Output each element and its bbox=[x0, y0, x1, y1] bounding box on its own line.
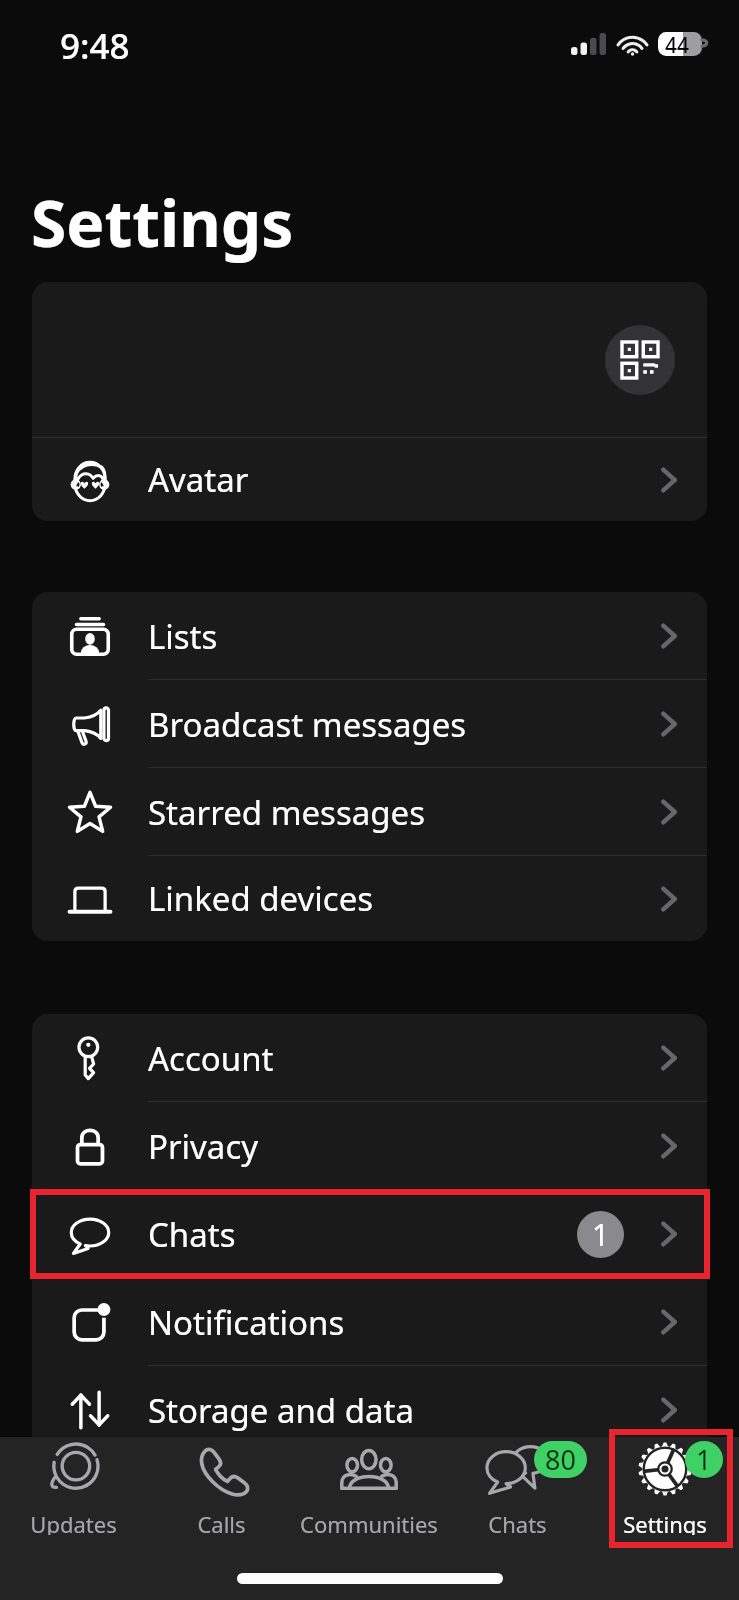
button[interactable]: Storage and data bbox=[32, 1366, 707, 1454]
staticText: Chats bbox=[148, 1212, 236, 1257]
button[interactable]: Calls bbox=[147, 1437, 295, 1535]
button[interactable]: 1 bbox=[591, 1437, 739, 1535]
staticText: Avatar bbox=[148, 457, 249, 502]
button[interactable]: Privacy bbox=[32, 1102, 707, 1190]
staticText: 80 bbox=[545, 1441, 576, 1478]
staticText: Privacy bbox=[148, 1124, 259, 1169]
button[interactable]: QR code bbox=[605, 325, 675, 395]
staticText: Linked devices bbox=[148, 876, 374, 921]
staticText: 44 bbox=[665, 31, 690, 55]
staticText: Broadcast messages bbox=[148, 702, 467, 747]
button[interactable]: Communities bbox=[295, 1437, 443, 1535]
button[interactable]: Updates bbox=[0, 1437, 147, 1535]
button[interactable]: 80 bbox=[443, 1437, 591, 1535]
staticText: Storage and data bbox=[148, 1388, 414, 1433]
staticText: 1 bbox=[592, 1214, 610, 1255]
button[interactable]: Chats bbox=[32, 1190, 707, 1278]
button[interactable]: Avatar bbox=[32, 438, 707, 521]
staticText: 9:48 bbox=[60, 22, 130, 70]
staticText: Lists bbox=[148, 614, 218, 659]
staticText: Account bbox=[148, 1036, 274, 1081]
staticText: Calls bbox=[197, 1509, 246, 1535]
staticText: 1 bbox=[696, 1441, 712, 1478]
button[interactable]: Notifications bbox=[32, 1278, 707, 1366]
staticText: Starred messages bbox=[148, 790, 425, 835]
staticText: Updates bbox=[30, 1509, 117, 1535]
button[interactable]: QR code bbox=[32, 282, 707, 437]
staticText: Notifications bbox=[148, 1300, 345, 1345]
button[interactable]: Linked devices bbox=[32, 856, 707, 941]
button[interactable]: Account bbox=[32, 1014, 707, 1102]
staticText: Chats bbox=[488, 1509, 547, 1535]
button[interactable]: Lists bbox=[32, 592, 707, 680]
button[interactable]: Starred messages bbox=[32, 768, 707, 856]
button[interactable]: Broadcast messages bbox=[32, 680, 707, 768]
staticText: Communities bbox=[300, 1509, 438, 1535]
staticText: Settings bbox=[623, 1509, 707, 1535]
staticText: Settings bbox=[31, 179, 294, 266]
